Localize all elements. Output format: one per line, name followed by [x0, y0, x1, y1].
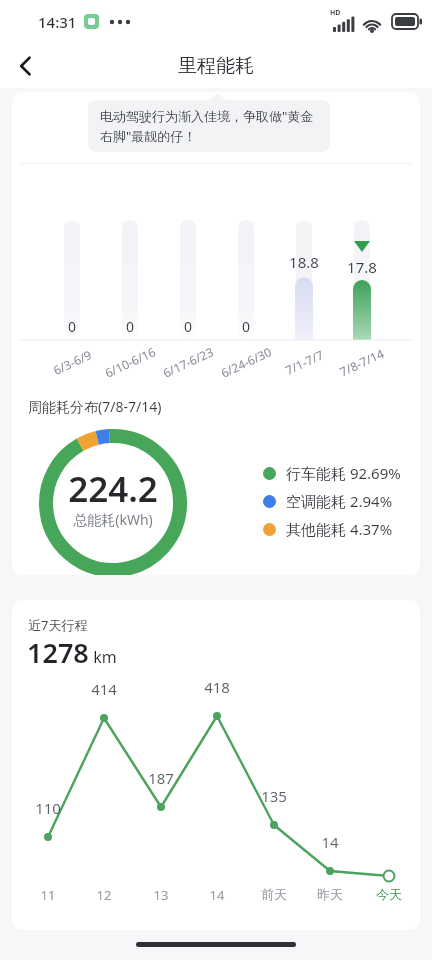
staticText: 7/8-7/14 — [337, 345, 387, 379]
button[interactable]: 13 — [131, 886, 191, 904]
staticText: 0 — [168, 317, 208, 336]
staticText: 近7天行程 — [28, 616, 88, 634]
staticText: 总能耗(kWh) — [43, 510, 183, 529]
button[interactable]: 昨天 — [300, 886, 360, 902]
staticText: 135 — [244, 786, 304, 806]
staticText: 里程能耗 — [178, 54, 254, 78]
staticText: 0 — [52, 317, 92, 336]
button[interactable]: 行车能耗 92.69% — [263, 463, 401, 483]
staticText: 14:31 — [38, 12, 77, 32]
staticText: 18.8 — [274, 252, 334, 272]
staticText: 空调能耗 2.94% — [286, 491, 393, 511]
button[interactable]: 电动驾驶行为渐入佳境，争取做"黄金 — [100, 105, 318, 147]
button[interactable]: 11 — [18, 886, 78, 904]
staticText: 110 — [18, 798, 78, 818]
staticText: 7/1-7/7 — [282, 346, 326, 378]
staticText: 1278 — [27, 634, 89, 671]
staticText: 其他能耗 4.37% — [286, 519, 393, 539]
staticText: 6/10-6/16 — [102, 343, 158, 381]
staticText: 0 — [226, 317, 266, 336]
staticText: 0 — [110, 317, 150, 336]
staticText: 414 — [74, 679, 134, 699]
button[interactable]: 今天 — [359, 886, 419, 902]
staticText: 187 — [131, 768, 191, 788]
staticText: 行车能耗 92.69% — [286, 463, 401, 483]
button[interactable]: 前天 — [244, 886, 304, 902]
staticText: 6/24-6/30 — [218, 343, 274, 381]
staticText: 14 — [300, 832, 360, 852]
staticText: 418 — [187, 677, 247, 697]
staticText: 6/3-6/9 — [50, 346, 94, 378]
staticText: km — [89, 646, 117, 668]
staticText: 6/17-6/23 — [160, 343, 216, 381]
button[interactable]: 空调能耗 2.94% — [263, 491, 393, 511]
staticText: 周能耗分布(7/8-7/14) — [28, 397, 162, 416]
button[interactable]: 其他能耗 4.37% — [263, 519, 393, 539]
button[interactable]: 14 — [187, 886, 247, 904]
staticText: 电动驾驶行为渐入佳境，争取做"黄金 — [100, 107, 314, 125]
button[interactable]: 12 — [74, 886, 134, 904]
staticText: 224.2 — [43, 465, 183, 513]
staticText: 右脚"最靓的仔！ — [100, 127, 197, 145]
staticText: 17.8 — [332, 257, 392, 277]
staticText: HD — [330, 8, 341, 18]
button[interactable] — [16, 56, 36, 76]
